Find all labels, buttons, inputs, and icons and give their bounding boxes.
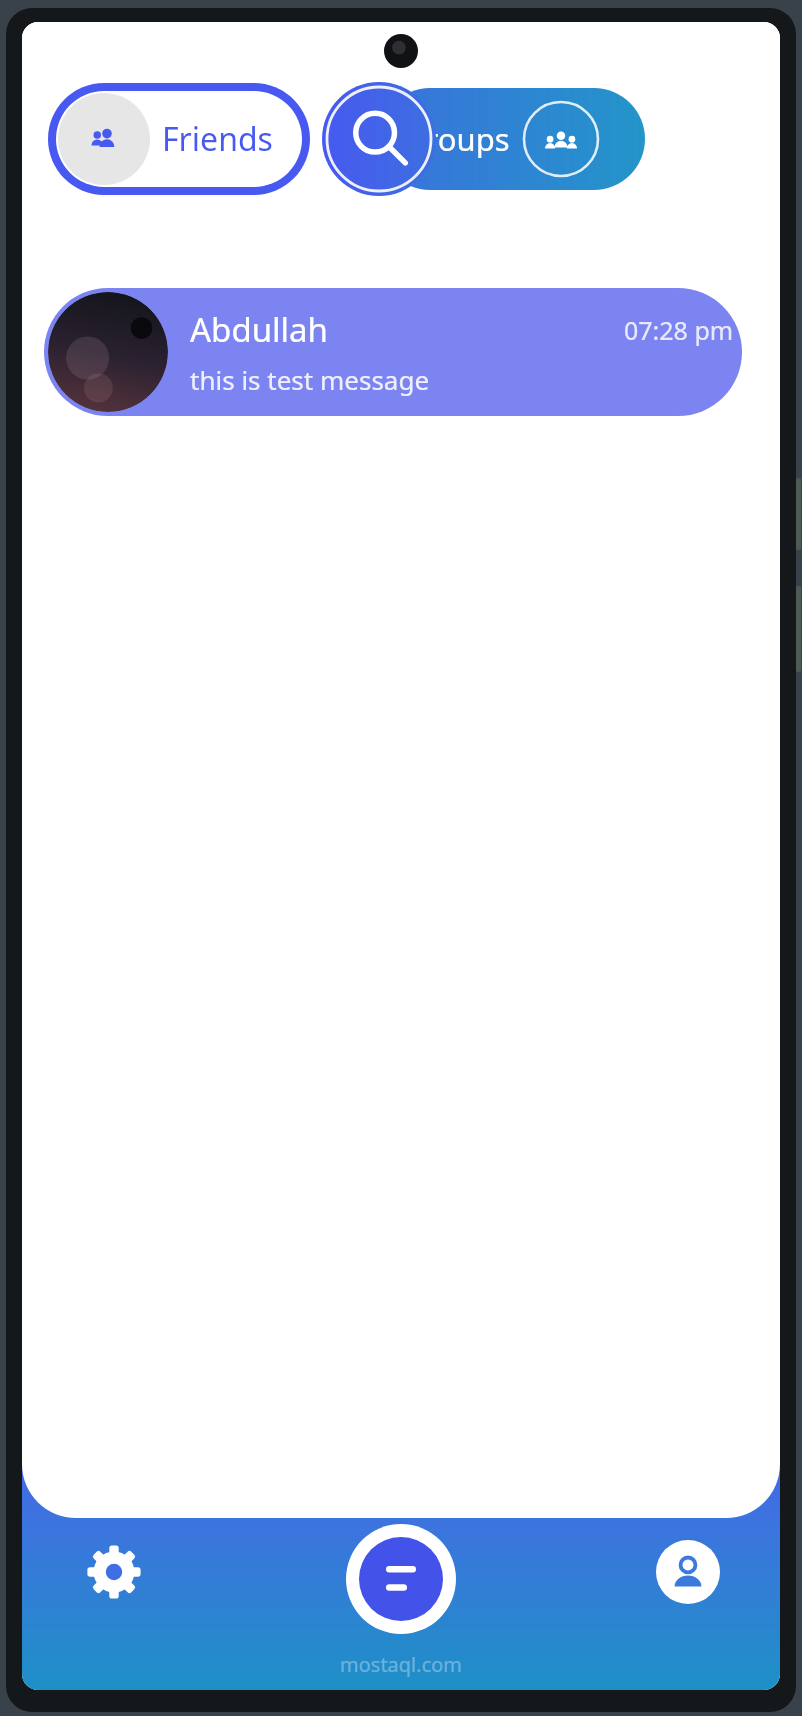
staticText: Friends	[162, 117, 273, 161]
button[interactable]: Settings	[68, 1526, 160, 1618]
button[interactable]: Messages	[346, 1524, 456, 1634]
staticText: mostaql.com	[340, 1651, 463, 1678]
button[interactable]: Profile	[642, 1526, 734, 1618]
button[interactable]: Abdullah	[44, 288, 742, 416]
button[interactable]: Search	[322, 82, 436, 196]
staticText: 07:28 pm	[624, 313, 734, 347]
button[interactable]: Groups	[379, 88, 645, 190]
staticText: Groups	[403, 118, 510, 160]
staticText: Abdullah	[190, 307, 329, 352]
button[interactable]: Friends	[56, 91, 302, 187]
staticText: this is test message	[190, 362, 430, 397]
